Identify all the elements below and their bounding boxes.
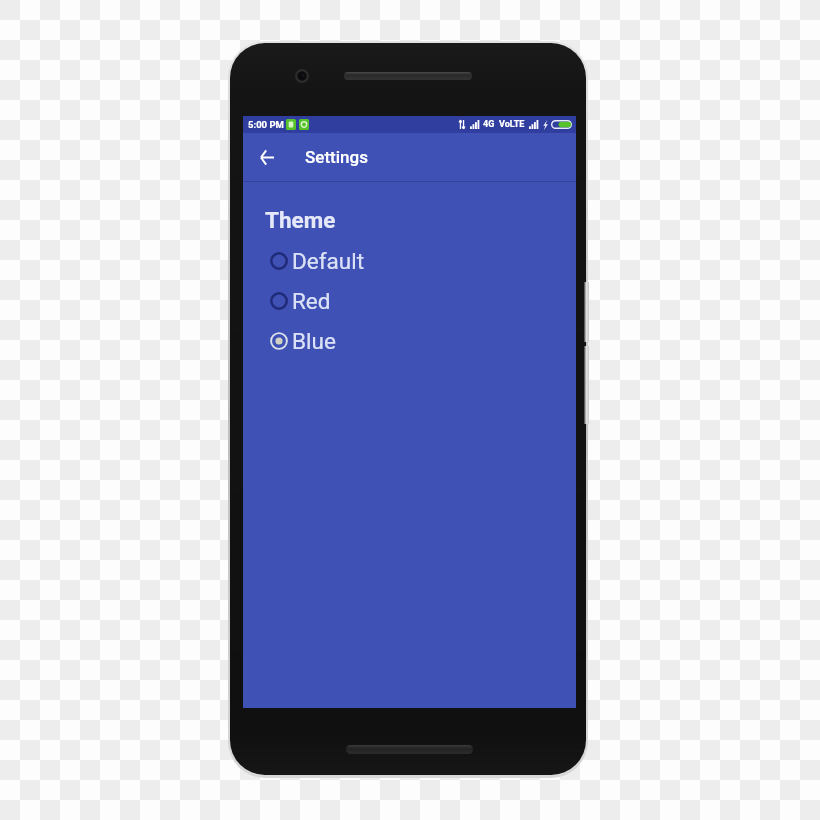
staticText: Theme [265,207,336,233]
staticText: Blue [292,328,336,354]
staticText: Red [292,288,331,314]
button[interactable]: Default [243,241,576,281]
staticText: 5:00 PM [248,119,284,130]
staticText: 4G [483,119,495,130]
button[interactable]: Red [243,281,576,321]
staticText: Settings [305,147,368,167]
staticText: VoLTE [499,119,525,130]
staticText: Default [292,248,364,274]
button[interactable]: Blue [243,321,576,361]
button[interactable]: Back [243,133,291,181]
